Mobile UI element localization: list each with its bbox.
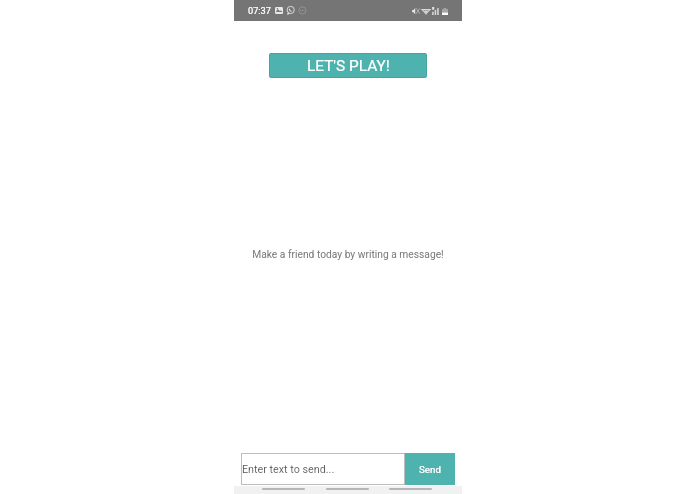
- button[interactable]: LET'S PLAY!: [269, 53, 427, 78]
- button[interactable]: Navigation: [389, 485, 432, 493]
- staticText: 07:37: [248, 5, 271, 16]
- button[interactable]: Navigation: [262, 485, 305, 493]
- staticText: LET'S PLAY!: [307, 57, 390, 75]
- button[interactable]: Navigation: [326, 485, 369, 493]
- staticText: Enter text to send...: [242, 463, 335, 476]
- button[interactable]: Enter text to send...: [241, 453, 405, 485]
- button[interactable]: Send: [405, 453, 455, 485]
- staticText: Make a friend today by writing a message…: [252, 248, 444, 260]
- staticText: Send: [419, 464, 441, 475]
